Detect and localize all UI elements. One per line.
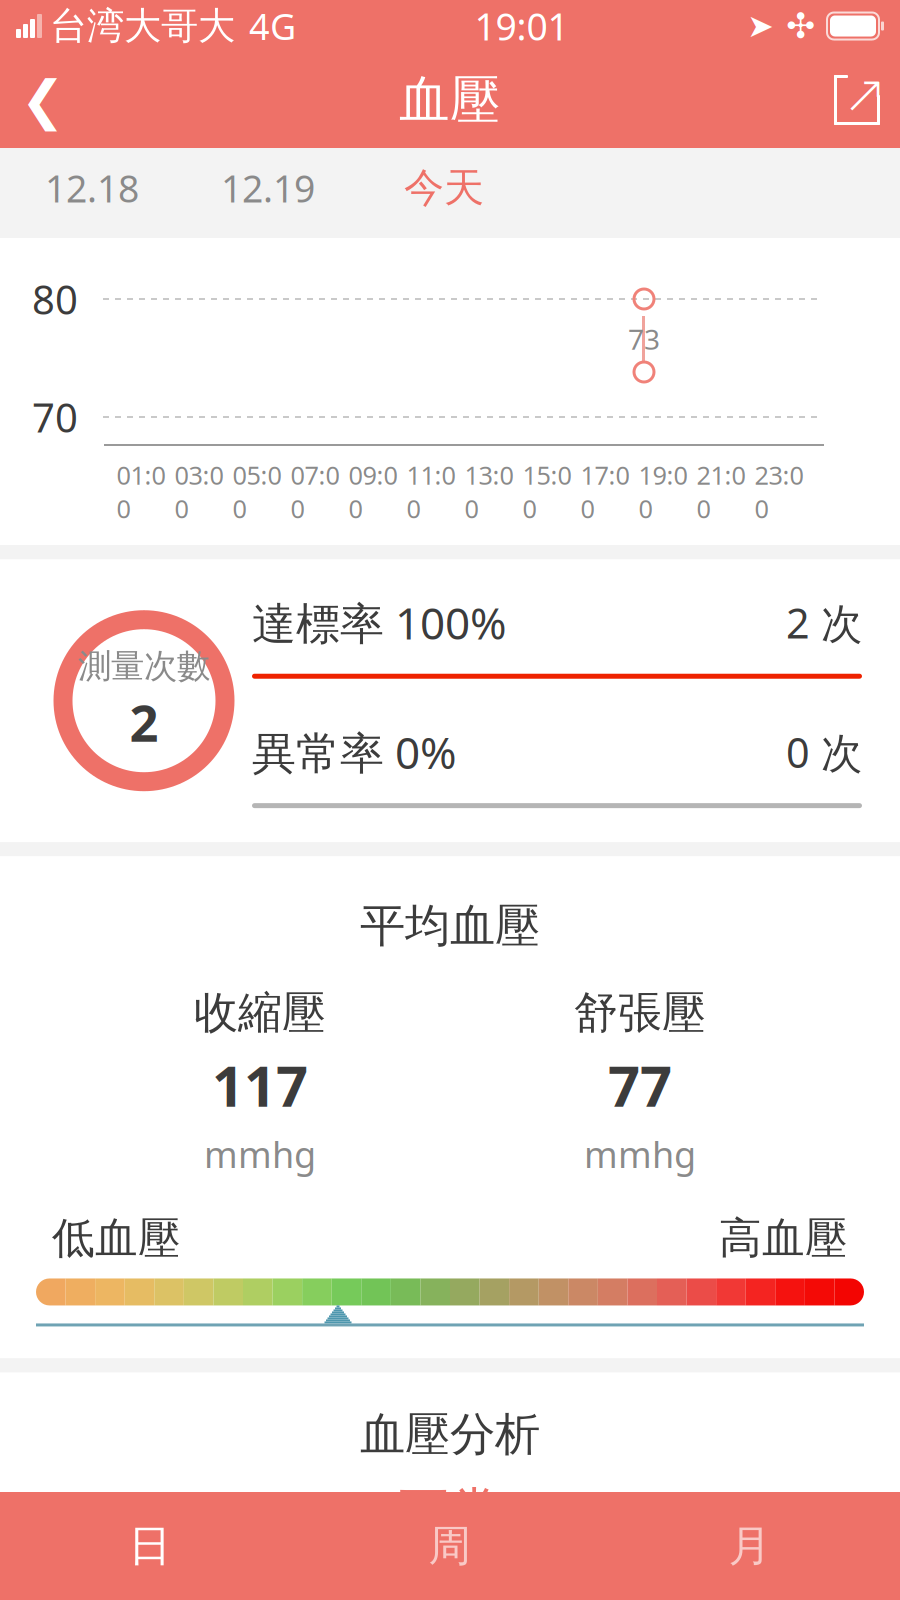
staticText: 收縮壓	[194, 986, 326, 1040]
staticText: 80	[32, 272, 78, 325]
staticText: ↗	[842, 64, 887, 124]
staticText: 11:00	[406, 458, 455, 525]
staticText: 異常率 0%	[252, 723, 457, 781]
button[interactable]: 今天	[356, 148, 532, 228]
staticText: mmhg	[584, 1130, 696, 1178]
staticText: 03:00	[174, 458, 223, 525]
staticText: 低血壓	[52, 1212, 181, 1264]
staticText: 平均血壓	[360, 898, 540, 954]
staticText: ✣	[786, 6, 815, 46]
staticText: 2	[129, 688, 158, 756]
staticText: 您在正常範圍內，但不算是最完美的，請放心，我們會為您持續測量關注，也請您定時鍛煉…	[54, 1564, 846, 1600]
button[interactable]: Back	[0, 52, 86, 148]
staticText: mmhg	[204, 1130, 316, 1178]
staticText: 15:00	[522, 458, 571, 525]
button[interactable]: 12.18	[4, 148, 180, 228]
staticText: 19:00	[638, 458, 687, 525]
button[interactable]: Share	[814, 52, 900, 148]
staticText: ❮	[20, 70, 65, 130]
staticText: ➤	[747, 8, 774, 44]
staticText: 血壓分析	[360, 1406, 540, 1462]
staticText: 09:00	[348, 458, 397, 525]
staticText: 117	[212, 1048, 308, 1122]
button[interactable]: 月	[600, 1492, 900, 1600]
staticText: 2 次	[786, 595, 862, 650]
staticText: 日	[128, 1520, 171, 1572]
staticText: 23:00	[754, 458, 803, 525]
staticText: 0 次	[786, 724, 862, 779]
staticText: 4G	[249, 2, 296, 50]
staticText: 12.18	[45, 163, 139, 213]
staticText: 達標率 100%	[252, 593, 507, 652]
staticText: 周	[428, 1520, 471, 1572]
staticText: 77	[608, 1048, 672, 1122]
staticText: 月	[728, 1520, 771, 1572]
staticText: 今天	[404, 163, 484, 212]
staticText: 21:00	[696, 458, 745, 525]
staticText: 台湾大哥大	[50, 3, 235, 49]
staticText: 血壓	[399, 69, 501, 131]
staticText: 測量次數	[78, 646, 210, 686]
staticText: 01:00	[116, 458, 165, 525]
staticText: 73	[628, 320, 660, 358]
staticText: 70	[32, 390, 78, 443]
staticText: 13:00	[464, 458, 513, 525]
staticText: 正常	[397, 1480, 503, 1546]
staticText: 17:00	[580, 458, 629, 525]
staticText: 05:00	[232, 458, 281, 525]
staticText: 19:01	[474, 1, 568, 51]
button[interactable]: 日	[0, 1492, 300, 1600]
staticText: 12.19	[221, 163, 315, 213]
button[interactable]: 周	[300, 1492, 600, 1600]
button[interactable]: 12.19	[180, 148, 356, 228]
staticText: 舒張壓	[574, 986, 706, 1040]
staticText: 高血壓	[719, 1212, 848, 1264]
staticText: 07:00	[290, 458, 339, 525]
